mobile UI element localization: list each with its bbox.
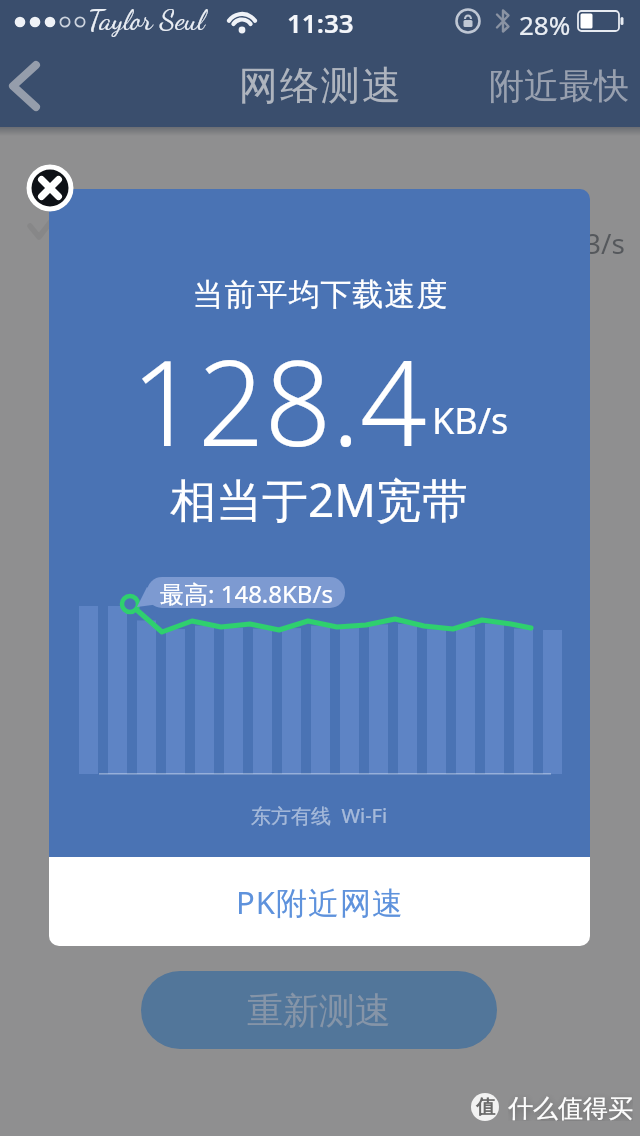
staticText: 最高: 148.8KB/s bbox=[160, 577, 333, 608]
staticText: PK附近网速 bbox=[236, 881, 404, 923]
staticText: 网络测速 bbox=[238, 61, 402, 110]
staticText: 值 bbox=[476, 1095, 495, 1119]
button[interactable]: PK附近网速 bbox=[49, 857, 590, 946]
staticText: 28% bbox=[519, 7, 571, 42]
staticText: KB/s bbox=[432, 396, 509, 445]
staticText: 当前平均下载速度 bbox=[192, 275, 448, 314]
staticText: 什么值得买 bbox=[508, 1093, 633, 1121]
button[interactable] bbox=[26, 164, 74, 212]
staticText: 3/s bbox=[585, 224, 625, 262]
staticText: Taylor Seul bbox=[88, 2, 205, 37]
staticText: 128.4 bbox=[131, 321, 427, 480]
staticText: 重新测速 bbox=[247, 988, 391, 1033]
button[interactable]: 附近最快 bbox=[489, 64, 629, 108]
staticText: 附近最快 bbox=[489, 64, 629, 108]
button[interactable]: 重新测速 bbox=[141, 971, 497, 1049]
staticText: 东方有线 Wi-Fi bbox=[251, 802, 388, 829]
staticText: 相当于2M宽带 bbox=[170, 468, 469, 528]
button[interactable] bbox=[0, 58, 56, 114]
staticText: 11:33 bbox=[287, 5, 354, 40]
